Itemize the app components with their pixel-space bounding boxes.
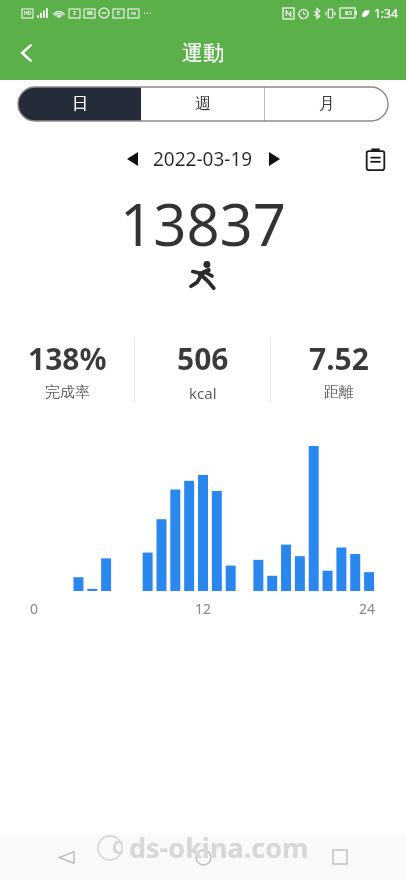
button[interactable]: Back — [0, 26, 54, 80]
staticText: 日 — [72, 94, 88, 114]
staticText: 運動 — [182, 40, 224, 66]
staticText: Z — [73, 10, 76, 17]
button[interactable]: Recents — [320, 837, 360, 877]
staticText: 1:34 — [374, 5, 398, 21]
button[interactable]: 月 — [265, 87, 388, 121]
button[interactable]: 週 — [141, 87, 264, 121]
staticText: 506 — [177, 338, 229, 379]
staticText: 週 — [195, 94, 211, 114]
button[interactable]: Next day — [259, 144, 289, 174]
staticText: 88 — [87, 10, 93, 17]
staticText: 月 — [319, 94, 335, 114]
staticText: 7.52 — [309, 338, 369, 379]
button[interactable]: 138% — [0, 338, 134, 402]
staticText: 83 — [345, 9, 352, 17]
staticText: kcal — [189, 383, 217, 403]
staticText: m — [131, 10, 136, 17]
staticText: 0 — [30, 599, 39, 618]
staticText: ⋯ — [143, 8, 152, 18]
button[interactable]: 日 — [18, 87, 141, 121]
staticText: 12 — [195, 599, 212, 618]
staticText: 完成率 — [45, 383, 90, 402]
button[interactable]: Home — [183, 837, 223, 877]
button[interactable]: 7.52 — [271, 338, 406, 402]
button[interactable]: Previous day — [117, 144, 147, 174]
staticText: ds-okina.com — [129, 829, 309, 866]
button[interactable]: Back — [46, 837, 86, 877]
staticText: 13837 — [120, 184, 286, 256]
staticText: 24 — [359, 599, 376, 618]
button[interactable]: 506 — [135, 338, 270, 403]
staticText: C — [112, 835, 124, 860]
button[interactable]: Records — [358, 142, 392, 176]
staticText: 距離 — [324, 383, 354, 402]
staticText: HD — [24, 10, 32, 17]
staticText: E — [117, 10, 120, 17]
staticText: 2022-03-19 — [153, 146, 253, 172]
staticText: 138% — [28, 338, 107, 379]
